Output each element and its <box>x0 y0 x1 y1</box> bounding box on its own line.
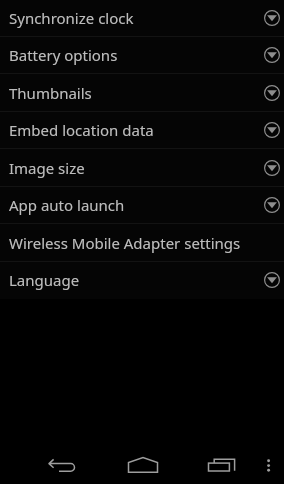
button[interactable]: Back <box>42 454 82 480</box>
staticText: Embed location data <box>9 120 154 140</box>
button[interactable]: Wireless Mobile Adapter settings <box>0 224 284 262</box>
button[interactable]: More options <box>255 454 283 480</box>
button[interactable]: App auto launch <box>0 186 284 224</box>
button[interactable]: Battery options <box>0 36 284 74</box>
staticText: Image size <box>9 158 85 178</box>
button[interactable]: Expand <box>261 82 283 104</box>
button[interactable]: Expand <box>261 44 283 66</box>
button[interactable]: Expand <box>261 119 283 141</box>
staticText: App auto launch <box>9 195 125 215</box>
staticText: Language <box>9 270 80 290</box>
button[interactable]: Recent apps <box>200 454 240 480</box>
button[interactable]: Expand <box>261 7 283 29</box>
staticText: Thumbnails <box>9 83 92 103</box>
button[interactable]: Thumbnails <box>0 74 284 112</box>
button[interactable]: Expand <box>261 157 283 179</box>
staticText: Battery options <box>9 45 118 65</box>
button[interactable]: Image size <box>0 149 284 187</box>
button[interactable]: Language <box>0 261 284 299</box>
button[interactable]: Embed location data <box>0 111 284 149</box>
staticText: Wireless Mobile Adapter settings <box>9 233 241 253</box>
button[interactable]: Synchronize clock <box>0 0 284 37</box>
button[interactable]: Home <box>123 454 163 480</box>
staticText: Synchronize clock <box>9 8 134 28</box>
button[interactable]: Expand <box>261 194 283 216</box>
button[interactable]: Expand <box>261 269 283 291</box>
